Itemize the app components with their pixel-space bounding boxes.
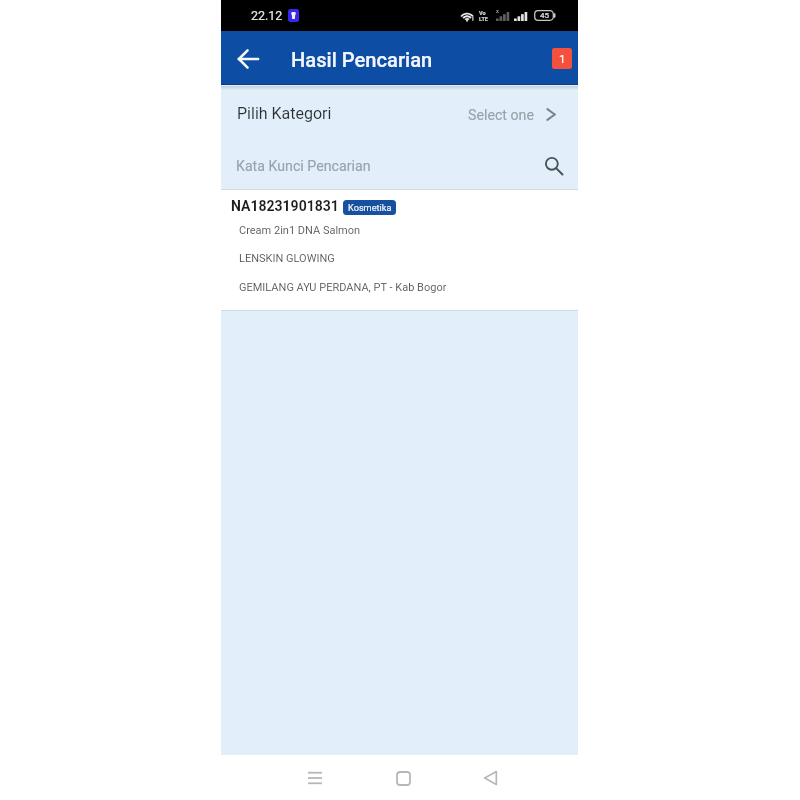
button[interactable]: Pilih Kategori: [221, 85, 578, 142]
staticText: Vo: [479, 10, 486, 16]
button[interactable]: Recent apps: [295, 758, 335, 798]
button[interactable]: Back: [470, 758, 510, 798]
staticText: GEMILANG AYU PERDANA, PT - Kab Bogor: [239, 281, 447, 294]
staticText: LTE: [479, 16, 488, 22]
button[interactable]: Back: [234, 45, 262, 73]
button[interactable]: Kata Kunci Pencarian: [221, 142, 578, 189]
button[interactable]: Search: [539, 151, 569, 181]
staticText: 22.12: [251, 8, 283, 23]
staticText: Hasil Pencarian: [291, 48, 433, 72]
button[interactable]: Notifications: [552, 48, 572, 69]
staticText: 45: [540, 11, 549, 20]
staticText: NA18231901831: [231, 198, 339, 214]
staticText: LENSKIN GLOWING: [239, 252, 335, 265]
button[interactable]: NA18231901831: [221, 190, 578, 310]
staticText: Pilih Kategori: [237, 104, 332, 123]
staticText: Kata Kunci Pencarian: [236, 158, 371, 175]
staticText: 1: [559, 52, 566, 65]
button[interactable]: Home: [383, 758, 423, 798]
staticText: Kosmetika: [348, 202, 392, 213]
staticText: Cream 2in1 DNA Salmon: [239, 224, 361, 237]
staticText: x: [496, 7, 499, 14]
staticText: Select one: [468, 107, 534, 124]
